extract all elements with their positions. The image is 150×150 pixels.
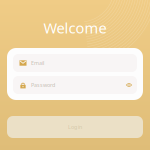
button[interactable]: Email [13,54,137,72]
staticText: Email [31,59,44,67]
staticText: Log in [68,123,82,131]
button[interactable]: Password [13,76,137,94]
button[interactable]: Log in [7,116,143,138]
staticText: Password [31,81,55,89]
staticText: Welcome [43,18,106,37]
